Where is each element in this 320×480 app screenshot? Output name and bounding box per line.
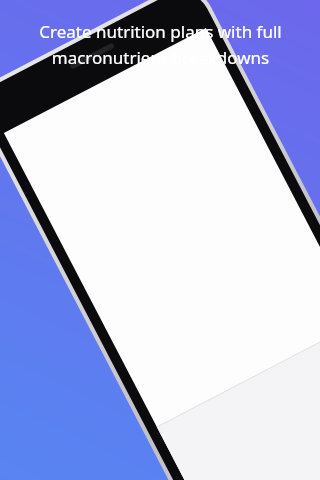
- other: Phone showing nutrition plan: [0, 0, 320, 480]
- button[interactable]: Create nutrition plans with full macronu…: [24, 20, 296, 69]
- staticText: Create nutrition plans with full macronu…: [39, 20, 282, 69]
